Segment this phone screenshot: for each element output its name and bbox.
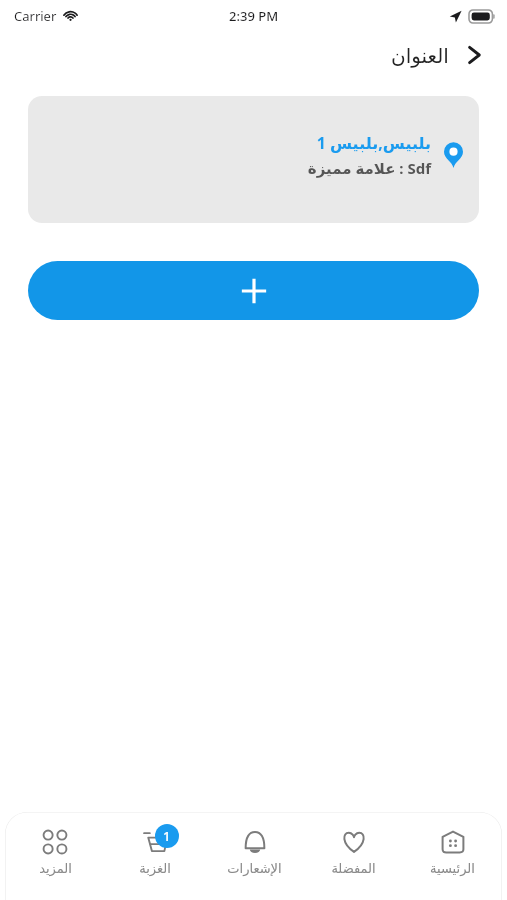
staticText: المفضلة [331, 861, 376, 876]
staticText: المزيد [39, 861, 72, 876]
staticText: 1 [163, 827, 171, 845]
button[interactable]: Home [403, 826, 502, 878]
button[interactable]: العنوان [387, 36, 493, 74]
staticText: الرئيسية [430, 861, 475, 876]
button[interactable]: Notifications [205, 826, 304, 878]
staticText: الغزبة [139, 861, 171, 876]
staticText: العنوان [391, 44, 449, 67]
other: Back [459, 40, 489, 70]
staticText: الإشعارات [227, 861, 282, 876]
button[interactable]: More [5, 826, 105, 878]
staticText: 2:39 PM [229, 7, 279, 25]
button[interactable]: Favorites [304, 826, 403, 878]
staticText: علامة مميزة : Sdf [307, 158, 431, 178]
button[interactable]: بلبيس,بلبيس 1 [28, 96, 479, 223]
other: Location [439, 141, 467, 169]
button[interactable]: Cart [105, 826, 205, 878]
button[interactable]: Add address [28, 261, 479, 320]
staticText: بلبيس,بلبيس 1 [316, 132, 431, 154]
staticText: Carrier [14, 7, 57, 25]
